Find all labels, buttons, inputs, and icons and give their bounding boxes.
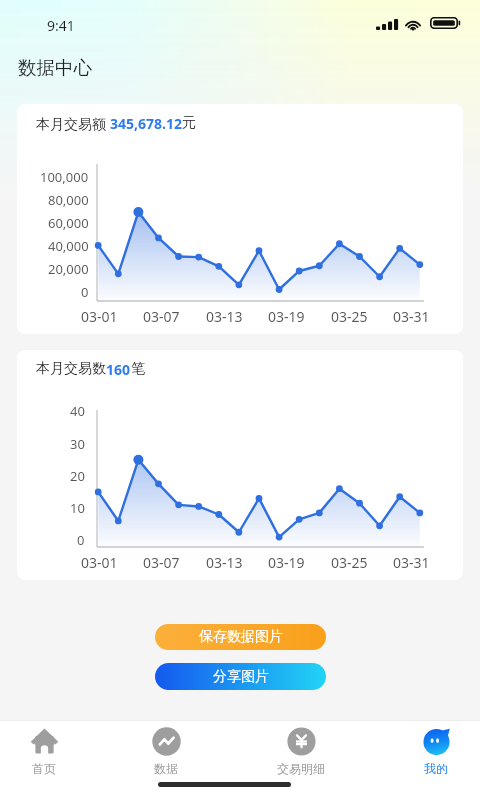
staticText: 03-25 — [331, 553, 368, 572]
button[interactable]: 首页 — [4, 727, 84, 776]
staticText: 交易明细 — [277, 761, 325, 776]
staticText: 80,000 — [48, 191, 89, 209]
button[interactable]: 交易明细 — [261, 727, 341, 776]
staticText: 数据 — [154, 761, 178, 776]
button[interactable]: 我的 — [396, 727, 476, 776]
staticText: 03-31 — [393, 307, 430, 326]
staticText: 元 — [182, 114, 196, 132]
staticText: 100,000 — [40, 168, 89, 186]
staticText: 数据中心 — [18, 56, 92, 79]
staticText: 03-07 — [143, 307, 180, 326]
staticText: 30 — [70, 435, 85, 453]
staticText: 03-01 — [81, 307, 118, 326]
staticText: 首页 — [32, 761, 56, 776]
staticText: 0 — [77, 531, 85, 549]
staticText: 03-13 — [206, 553, 243, 572]
staticText: 40,000 — [48, 237, 89, 255]
staticText: 9:41 — [47, 16, 75, 35]
staticText: 40 — [70, 402, 85, 420]
staticText: 60,000 — [48, 214, 89, 232]
staticText: 160 — [106, 360, 131, 379]
staticText: 分享图片 — [213, 668, 269, 686]
staticText: 20,000 — [48, 260, 89, 278]
staticText: 保存数据图片 — [199, 628, 283, 646]
staticText: 本月交易数 — [36, 360, 106, 378]
staticText: 笔 — [131, 360, 145, 378]
staticText: 03-31 — [393, 553, 430, 572]
button[interactable]: 分享图片 — [155, 663, 326, 690]
staticText: 20 — [70, 467, 85, 485]
staticText: 03-25 — [331, 307, 368, 326]
button[interactable]: 数据 — [126, 727, 206, 776]
staticText: 03-01 — [81, 553, 118, 572]
staticText: 03-19 — [268, 553, 305, 572]
staticText: 我的 — [424, 761, 448, 776]
staticText: 本月交易额 — [36, 114, 110, 133]
staticText: 03-19 — [268, 307, 305, 326]
button[interactable]: 保存数据图片 — [155, 624, 326, 650]
staticText: 10 — [70, 499, 85, 517]
staticText: 0 — [81, 283, 89, 301]
staticText: 345,678.12 — [110, 114, 182, 133]
staticText: 03-07 — [143, 553, 180, 572]
staticText: 03-13 — [206, 307, 243, 326]
